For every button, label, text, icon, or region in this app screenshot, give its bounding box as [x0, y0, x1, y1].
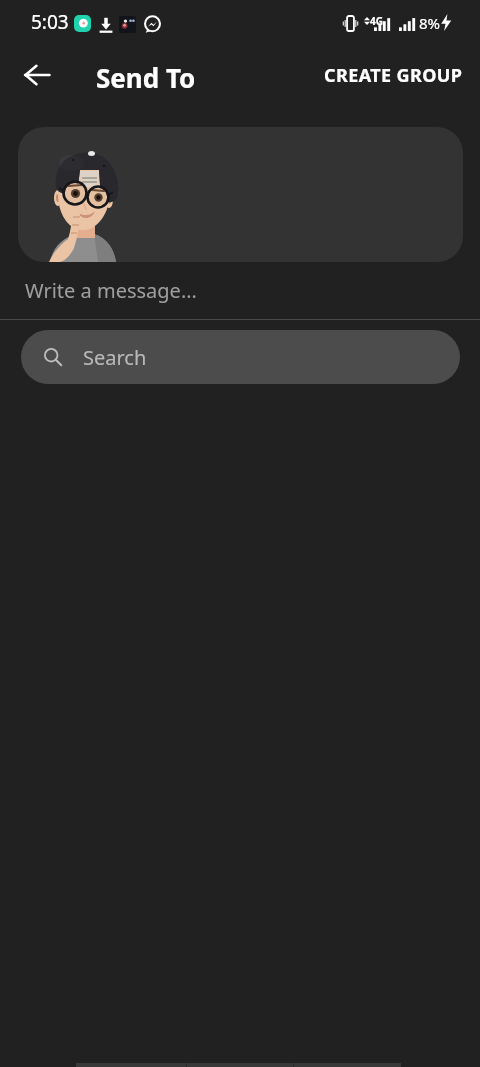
- button[interactable]: Back: [12, 50, 62, 100]
- staticText: 8%: [419, 13, 441, 33]
- button[interactable]: Sticker preview: [18, 127, 463, 262]
- staticText: 4G: [370, 14, 383, 28]
- button[interactable]: Write a message…: [0, 262, 480, 318]
- staticText: 5:03: [31, 9, 69, 35]
- button[interactable]: Search: [21, 330, 460, 384]
- button[interactable]: CREATE GROUP: [318, 58, 469, 93]
- staticText: Search: [83, 344, 147, 371]
- staticText: Send To: [96, 60, 196, 95]
- staticText: CREATE GROUP: [324, 63, 463, 88]
- staticText: Write a message…: [25, 277, 197, 304]
